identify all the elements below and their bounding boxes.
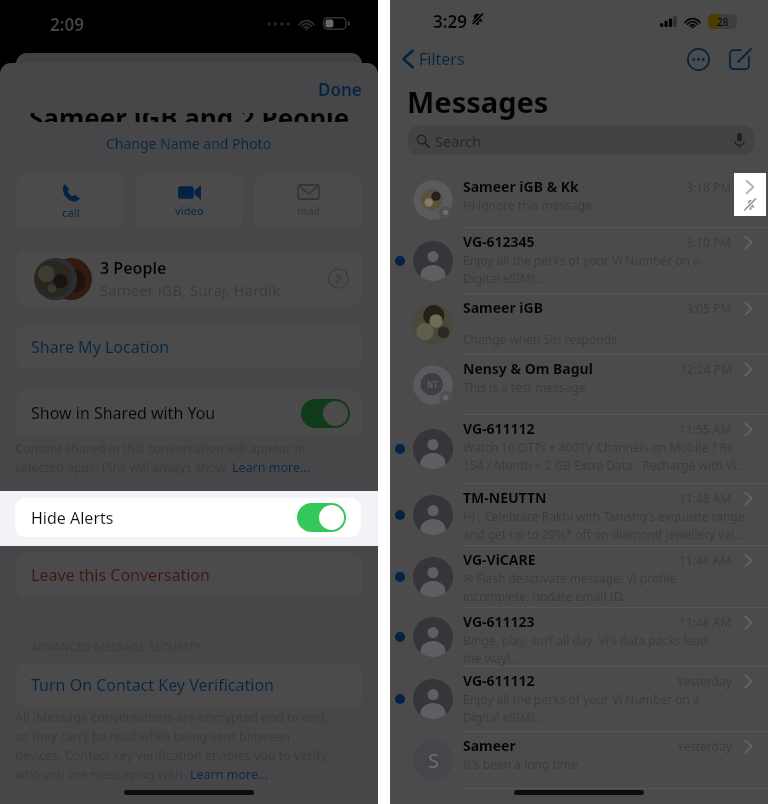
staticText: Change when Siri responds (463, 331, 617, 347)
staticText: NT (427, 379, 438, 390)
staticText: VG-ViCARE (463, 550, 536, 569)
button[interactable]: video (135, 174, 243, 228)
button[interactable]: mail (254, 174, 362, 228)
staticText: VG-611112 (463, 419, 535, 438)
button[interactable]: New message (725, 44, 755, 74)
staticText: Learn more... (190, 766, 269, 783)
staticText: Yesterday (677, 738, 732, 754)
staticText: selected apps. Pins will always show. (15, 459, 232, 476)
staticText: S (428, 747, 439, 774)
staticText: Filters (419, 48, 465, 70)
staticText: Done (318, 78, 362, 101)
button[interactable]: Sameer iGB & Kk (390, 173, 768, 228)
staticText: Turn On Contact Key Verification (31, 674, 274, 696)
staticText: Hi , Celebrate Rakhi with Tanishq's exqu… (463, 508, 745, 524)
staticText: This is a test message (463, 379, 586, 395)
staticText: Sameer iGB & Kk (463, 177, 579, 196)
staticText: VG-611123 (463, 612, 535, 631)
staticText: 3 People (100, 257, 167, 279)
staticText: Change Name and Photo (106, 134, 272, 153)
staticText: 12:24 PM (680, 361, 732, 377)
staticText: VG-612345 (463, 232, 535, 251)
button[interactable]: Sameer iGB (390, 294, 768, 355)
button[interactable]: VG-611112 (390, 415, 768, 484)
button[interactable]: Show in Shared with You (16, 390, 362, 436)
staticText: TM-NEUTTN (463, 488, 547, 507)
staticText: so they can't be read while being sent b… (15, 728, 290, 745)
staticText: 3:18 PM (686, 179, 732, 195)
staticText: 28 (717, 15, 729, 29)
button[interactable]: Leave this Conversation (16, 553, 362, 597)
staticText: Search (435, 131, 481, 151)
staticText: 11:55 AM (679, 421, 732, 437)
button[interactable] (297, 503, 346, 532)
staticText: Watch 16 OTTs + 400TV Channels on Mobile… (463, 439, 733, 455)
button[interactable]: More options (683, 44, 713, 74)
staticText: Learn more... (232, 459, 311, 476)
staticText: Enjoy all the perks of your Vi Number on… (463, 252, 700, 268)
staticText: 11:48 AM (679, 614, 732, 630)
button[interactable]: VG-611123 (390, 608, 768, 667)
staticText: devices. Contact key verification enable… (15, 747, 327, 764)
staticText: Sameer iGB and 2 People (29, 113, 350, 122)
staticText: Sameer iGB (463, 298, 543, 317)
button[interactable]: Filters (390, 48, 469, 70)
staticText: Nensy & Om Bagul (463, 359, 593, 378)
staticText: and get up to 20%* off on diamond jewell… (463, 526, 744, 542)
staticText: 2:09 (50, 13, 84, 36)
button[interactable]: VG-ViCARE (390, 546, 768, 608)
staticText: Enjoy all the perks of your Vi Number on… (463, 691, 700, 707)
staticText: Sameer iGB, Suraj, Hardik (100, 280, 281, 300)
staticText: 11:48 AM (679, 490, 732, 506)
staticText: Share My Location (31, 336, 170, 358)
staticText: video (175, 203, 204, 218)
staticText: Digital eSIM!... (463, 709, 544, 725)
staticText: 3:10 PM (686, 234, 732, 250)
button[interactable]: Change Name and Photo (103, 133, 275, 154)
staticText: Sameer (463, 736, 516, 755)
button[interactable]: Share My Location (16, 325, 362, 369)
staticText: Hi ignore this message. (463, 197, 596, 213)
staticText: who you are messaging with. (15, 766, 190, 783)
staticText: VG-611112 (463, 671, 535, 690)
staticText: Hide Alerts (31, 507, 114, 529)
staticText: call (62, 205, 80, 220)
staticText: 11:48 AM (679, 552, 732, 568)
button[interactable]: Hide Alerts (15, 498, 361, 537)
button[interactable]: VG-611112 (390, 667, 768, 732)
button[interactable]: call (16, 174, 124, 228)
staticText: Digital eSIM!... (463, 270, 544, 286)
staticText: It's been a long time (463, 756, 578, 772)
staticText: 3:29 (433, 10, 467, 33)
button[interactable]: NT (390, 355, 768, 415)
staticText: Show in Shared with You (31, 402, 216, 424)
staticText: Leave this Conversation (31, 564, 210, 586)
button[interactable]: S (390, 732, 768, 789)
button[interactable]: 3 People (16, 251, 362, 306)
button[interactable]: TM-NEUTTN (390, 484, 768, 546)
staticText: ADVANCED MESSAGE SECURITY (31, 639, 201, 655)
button[interactable]: VG-612345 (390, 228, 768, 294)
staticText: 154 / Month + 2 GB Extra Data . Recharge… (463, 457, 746, 473)
staticText: the way!... (463, 650, 520, 666)
button[interactable] (301, 399, 350, 428)
staticText: incomplete, update email ID. (463, 588, 626, 604)
button[interactable]: Turn On Contact Key Verification (16, 663, 362, 707)
staticText: Binge, play, surf all day. Vi's data pac… (463, 632, 708, 648)
staticText: All iMessage conversations are encrypted… (15, 709, 328, 726)
staticText: ✉ Flash deactivate message; Vi profile (463, 570, 677, 586)
staticText: Content shared in this conversation will… (15, 440, 306, 457)
staticText: Yesterday (677, 673, 732, 689)
button[interactable]: Done (315, 76, 365, 103)
staticText: mail (297, 203, 320, 218)
staticText: 3:05 PM (686, 300, 732, 316)
button[interactable]: Search (408, 126, 754, 155)
staticText: Messages (407, 82, 549, 121)
